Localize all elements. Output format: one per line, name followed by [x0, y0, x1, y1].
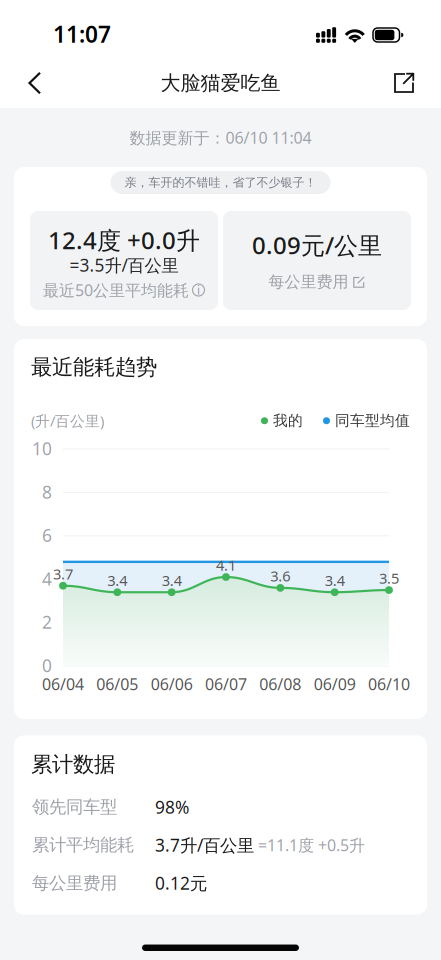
staticText: 3.7 — [53, 564, 73, 583]
staticText: 每公里费用 — [32, 872, 117, 894]
staticText: 6 — [42, 524, 52, 547]
staticText: 最近50公里平均能耗 — [43, 279, 189, 301]
staticText: 8 — [42, 480, 52, 503]
staticText: 3.4 — [325, 570, 345, 590]
staticText: 累计平均能耗 — [32, 834, 134, 856]
staticText: 4.1 — [216, 555, 236, 575]
staticText: 亲，车开的不错哇，省了不少银子！ — [124, 175, 316, 190]
staticText: (升/百公里) — [31, 411, 104, 430]
staticText: 领先同车型 — [32, 796, 117, 818]
staticText: 最近能耗趋势 — [31, 354, 157, 380]
staticText: 3.7升/百公里 — [155, 834, 254, 857]
button[interactable]: Back — [12, 58, 58, 107]
staticText: 0.09元/公里 — [252, 229, 382, 261]
staticText: 06/08 — [259, 673, 301, 695]
staticText: 10 — [32, 437, 52, 460]
staticText: 数据更新于：06/10 11:04 — [129, 127, 311, 148]
button[interactable]: Share — [379, 59, 429, 107]
staticText: 12.4度 +0.0升 — [48, 224, 200, 256]
staticText: 06/05 — [96, 673, 138, 695]
staticText: 3.4 — [162, 570, 182, 590]
staticText: 06/10 — [368, 673, 410, 695]
staticText: 4 — [42, 567, 52, 590]
staticText: 11:07 — [53, 19, 111, 49]
staticText: 06/07 — [205, 673, 247, 695]
staticText: 0 — [42, 654, 52, 677]
staticText: =11.1度 +0.5升 — [254, 834, 365, 856]
staticText: 0.12元 — [155, 872, 207, 895]
staticText: 06/04 — [42, 673, 84, 695]
staticText: 06/06 — [151, 673, 193, 695]
staticText: 2 — [42, 611, 52, 634]
staticText: 3.5 — [379, 568, 399, 588]
staticText: i — [197, 282, 200, 298]
staticText: 3.4 — [107, 570, 127, 590]
staticText: 同车型均值 — [335, 412, 410, 430]
staticText: 06/09 — [314, 673, 356, 695]
staticText: 大脸猫爱吃鱼 — [160, 71, 280, 95]
staticText: 累计数据 — [31, 751, 115, 778]
staticText: 3.6 — [270, 566, 290, 586]
staticText: 每公里费用 — [268, 272, 348, 292]
staticText: =3.5升/百公里 — [69, 253, 178, 276]
staticText: 98% — [155, 796, 189, 819]
staticText: 我的 — [273, 412, 303, 430]
